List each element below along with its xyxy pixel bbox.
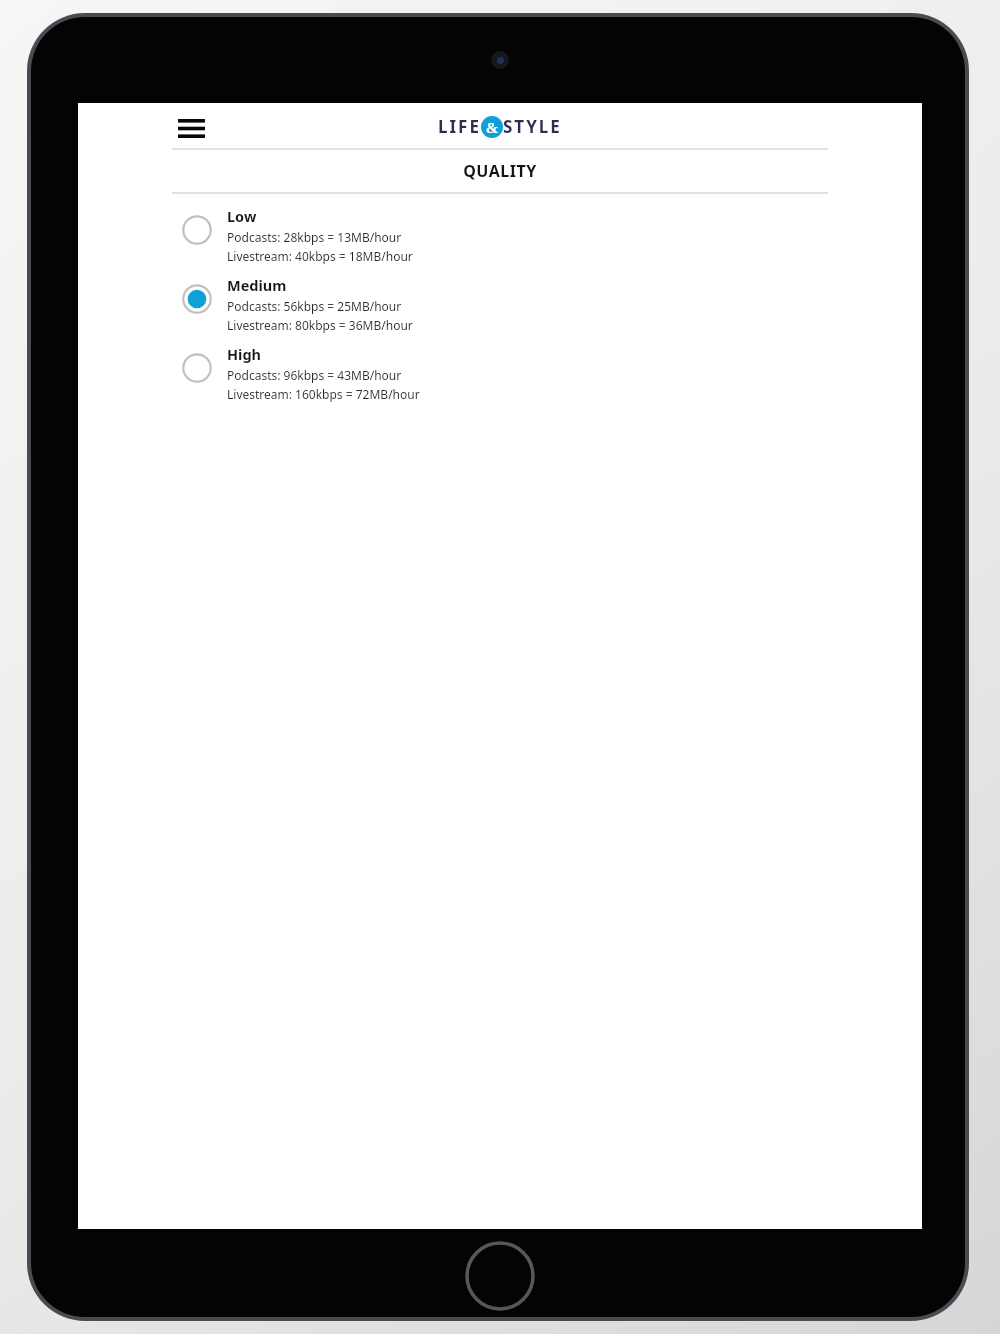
staticText: Livestream: 40kbps = 18MB/hour bbox=[227, 248, 413, 264]
button[interactable]: Low bbox=[78, 204, 922, 273]
staticText: Livestream: 80kbps = 36MB/hour bbox=[227, 317, 413, 333]
staticText: QUALITY bbox=[463, 160, 537, 182]
staticText: Podcasts: 56kbps = 25MB/hour bbox=[227, 298, 402, 314]
button[interactable]: High bbox=[78, 342, 922, 411]
button[interactable]: LIFE bbox=[438, 115, 562, 138]
staticText: Podcasts: 28kbps = 13MB/hour bbox=[227, 229, 402, 245]
button[interactable]: Open navigation menu bbox=[169, 106, 213, 150]
staticText: LIFE bbox=[438, 115, 481, 138]
staticText: Medium bbox=[227, 275, 287, 295]
staticText: Livestream: 160kbps = 72MB/hour bbox=[227, 386, 420, 402]
staticText: Low bbox=[227, 206, 257, 226]
button[interactable]: Medium bbox=[78, 273, 922, 342]
staticText: Podcasts: 96kbps = 43MB/hour bbox=[227, 367, 402, 383]
staticText: STYLE bbox=[503, 115, 562, 138]
staticText: High bbox=[227, 344, 262, 364]
staticText: & bbox=[486, 117, 499, 137]
